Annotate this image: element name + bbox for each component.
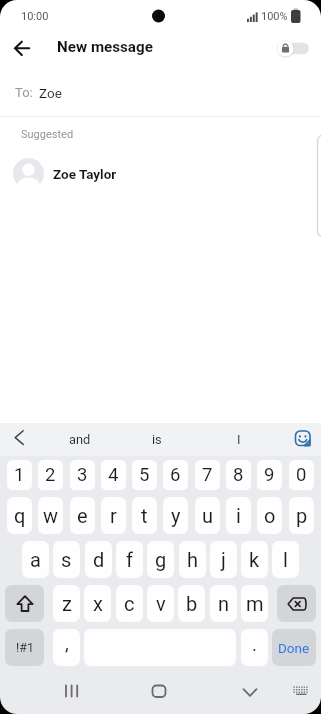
button[interactable]: is — [130, 424, 184, 454]
button[interactable]: 1 — [7, 460, 32, 490]
button[interactable]: l — [272, 541, 299, 578]
staticText: t — [141, 504, 148, 527]
staticText: 5 — [139, 464, 150, 486]
staticText: n — [218, 592, 230, 615]
button[interactable] — [288, 424, 317, 453]
staticText: . — [252, 633, 258, 655]
staticText: Done — [278, 640, 310, 656]
staticText: Zoe — [39, 85, 62, 101]
staticText: h — [187, 548, 199, 571]
button[interactable]: 8 — [226, 460, 251, 490]
staticText: w — [43, 504, 59, 527]
button[interactable]: I — [212, 424, 266, 454]
staticText: v — [156, 592, 166, 615]
staticText: c — [124, 592, 135, 615]
button[interactable]: s — [53, 541, 80, 578]
button[interactable] — [277, 585, 316, 622]
staticText: m — [246, 592, 264, 615]
button[interactable]: . — [241, 629, 268, 666]
button[interactable]: To: — [0, 70, 321, 116]
button[interactable]: and — [53, 424, 107, 454]
staticText: New message — [57, 38, 153, 56]
button[interactable]: x — [84, 585, 111, 622]
button[interactable]: q — [7, 497, 32, 534]
button[interactable]: f — [116, 541, 143, 578]
button[interactable]: 4 — [101, 460, 126, 490]
button[interactable]: j — [210, 541, 237, 578]
button[interactable]: !#1 — [5, 629, 44, 666]
staticText: Zoe Taylor — [53, 166, 117, 182]
button[interactable]: m — [241, 585, 268, 622]
button[interactable] — [272, 36, 314, 61]
button[interactable]: n — [210, 585, 237, 622]
button[interactable]: w — [38, 497, 63, 534]
staticText: 2 — [45, 464, 56, 486]
button[interactable]: d — [85, 541, 112, 578]
staticText: b — [186, 592, 198, 615]
button[interactable]: , — [53, 629, 80, 666]
button[interactable]: b — [178, 585, 205, 622]
button[interactable]: h — [179, 541, 206, 578]
staticText: 10:00 — [21, 10, 49, 23]
button[interactable]: e — [70, 497, 95, 534]
button[interactable] — [5, 585, 44, 622]
button[interactable]: 5 — [132, 460, 157, 490]
staticText: r — [110, 504, 117, 527]
button[interactable]: 3 — [70, 460, 95, 490]
button[interactable]: Zoe Taylor — [0, 154, 321, 196]
staticText: e — [77, 504, 88, 527]
button[interactable]: t — [132, 497, 157, 534]
staticText: s — [61, 548, 72, 571]
button[interactable] — [56, 676, 88, 706]
staticText: y — [171, 504, 181, 527]
button[interactable]: 9 — [257, 460, 282, 490]
button[interactable]: v — [147, 585, 174, 622]
button[interactable]: a — [22, 541, 49, 578]
button[interactable] — [6, 425, 32, 453]
button[interactable]: 0 — [289, 460, 314, 490]
staticText: g — [155, 548, 167, 571]
button[interactable]: z — [53, 585, 80, 622]
staticText: a — [30, 548, 41, 571]
button[interactable]: 2 — [38, 460, 63, 490]
button[interactable]: y — [163, 497, 188, 534]
button[interactable]: 6 — [163, 460, 188, 490]
staticText: d — [93, 548, 105, 571]
staticText: 100% — [261, 10, 288, 23]
staticText: and — [69, 432, 91, 447]
staticText: 1 — [14, 464, 25, 486]
staticText: 4 — [108, 464, 119, 486]
staticText: 3 — [77, 464, 88, 486]
staticText: 9 — [264, 464, 275, 486]
staticText: 8 — [233, 464, 244, 486]
button[interactable]: u — [195, 497, 220, 534]
button[interactable]: 7 — [195, 460, 220, 490]
staticText: is — [152, 432, 162, 447]
button[interactable] — [288, 678, 314, 704]
staticText: z — [62, 592, 72, 615]
button[interactable] — [144, 676, 174, 706]
button[interactable] — [236, 676, 264, 706]
button[interactable]: r — [101, 497, 126, 534]
staticText: To: — [15, 85, 33, 100]
button[interactable]: o — [257, 497, 282, 534]
staticText: Suggested — [21, 128, 74, 141]
button[interactable]: k — [241, 541, 268, 578]
button[interactable]: c — [116, 585, 143, 622]
staticText: o — [264, 504, 276, 527]
staticText: 0 — [296, 464, 307, 486]
staticText: j — [221, 548, 226, 571]
staticText: u — [202, 504, 214, 527]
button[interactable]: g — [147, 541, 174, 578]
staticText: f — [126, 548, 133, 571]
staticText: p — [296, 504, 308, 527]
button[interactable]: p — [289, 497, 314, 534]
staticText: l — [283, 548, 288, 571]
button[interactable]: Done — [272, 629, 316, 666]
staticText: i — [236, 504, 241, 527]
staticText: 7 — [202, 464, 213, 486]
staticText: 6 — [170, 464, 181, 486]
button[interactable]: i — [226, 497, 251, 534]
button[interactable] — [8, 36, 38, 62]
